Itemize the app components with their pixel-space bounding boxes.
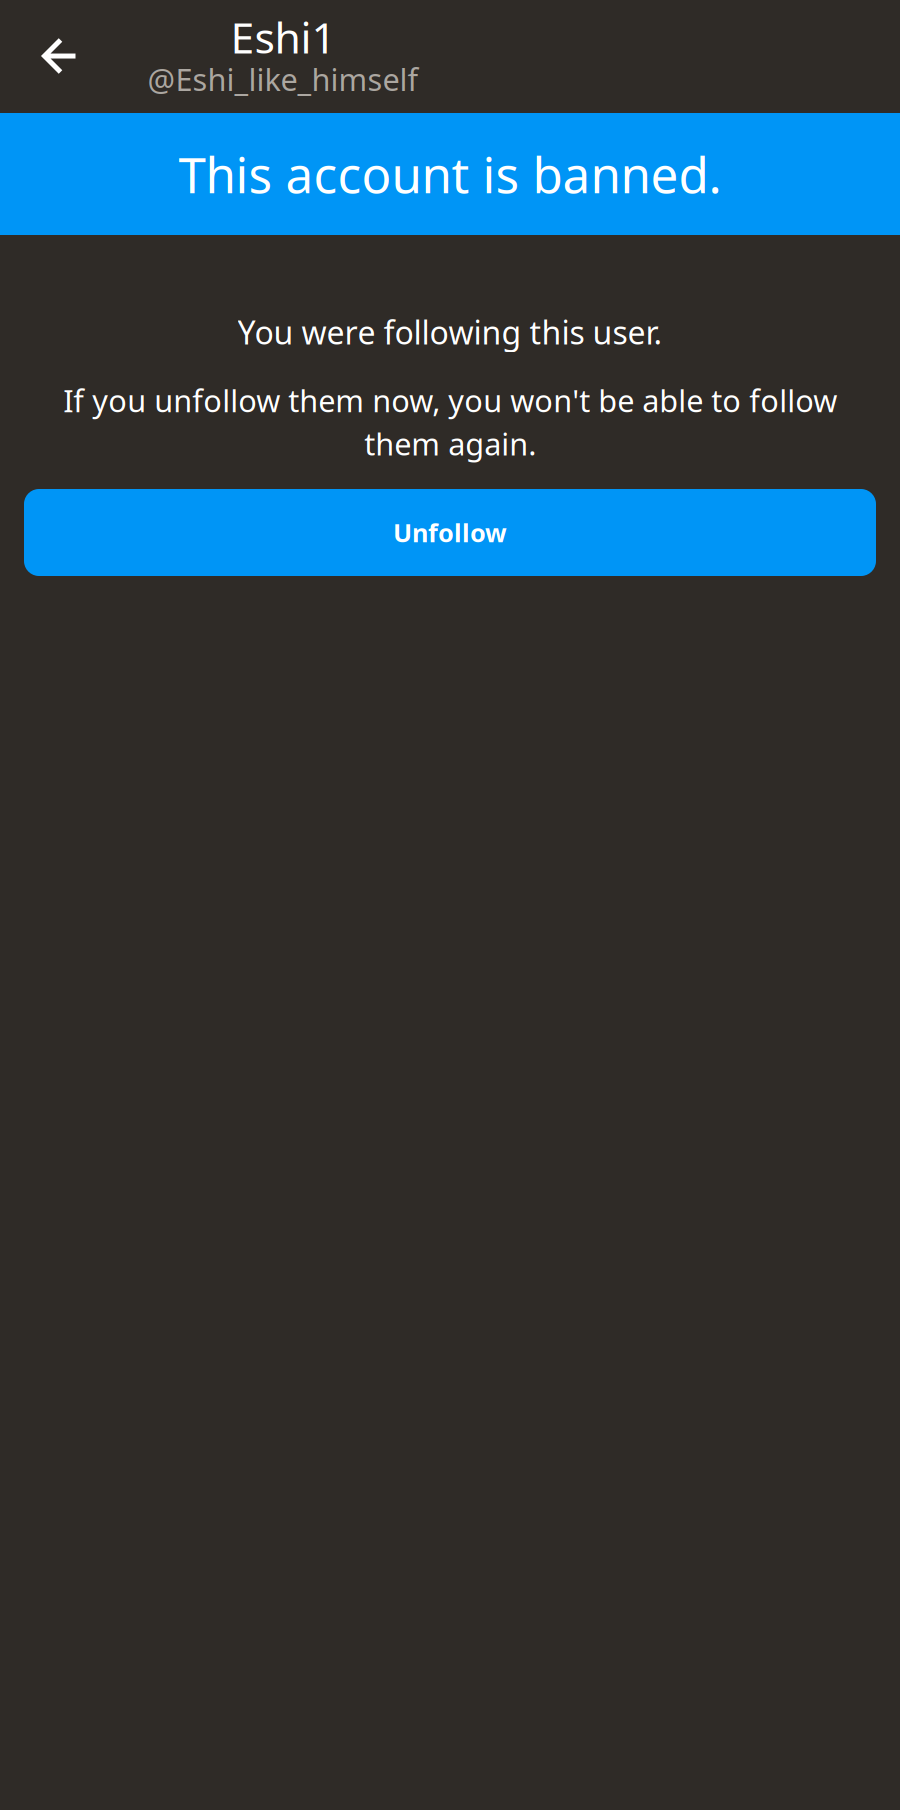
button[interactable]: Back — [19, 12, 101, 100]
button[interactable]: Unfollow — [24, 489, 876, 576]
staticText: @Eshi_like_himself — [147, 59, 418, 99]
staticText: You were following this user. — [237, 311, 662, 353]
staticText: Unfollow — [393, 516, 507, 549]
staticText: Eshi1 — [230, 9, 335, 65]
staticText: This account is banned. — [178, 141, 721, 207]
staticText: If you unfollow them now, you won't be a… — [63, 380, 837, 464]
